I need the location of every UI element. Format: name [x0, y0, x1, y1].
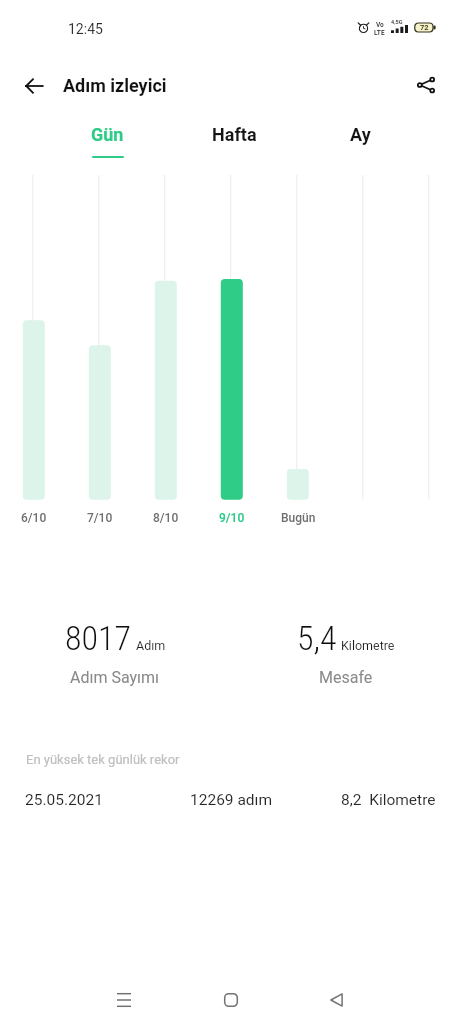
staticText: 72 [420, 23, 429, 32]
staticText: 12:45 [68, 21, 103, 37]
staticText: 4,5G [391, 19, 403, 25]
button[interactable]: Hafta [171, 112, 297, 156]
staticText: 8/10 [153, 511, 179, 525]
staticText: 12269 adım [190, 791, 273, 809]
staticText: 5,4 [297, 618, 337, 658]
staticText: 6/10 [21, 511, 47, 525]
staticText: Gün [91, 124, 124, 145]
button[interactable]: Recent apps [98, 974, 150, 1024]
staticText: 8,2 Kilometre [341, 791, 436, 809]
staticText: Mesafe [319, 668, 373, 687]
staticText: Hafta [212, 124, 257, 145]
staticText: Ay [350, 124, 371, 145]
staticText: 9/10 [219, 511, 245, 525]
button[interactable]: Ay [297, 112, 423, 156]
button[interactable]: Home [205, 974, 257, 1024]
staticText: 8017 [65, 618, 132, 658]
staticText: En yüksek tek günlük rekor [26, 752, 180, 767]
staticText: 7/10 [87, 511, 113, 525]
staticText: Adım Sayımı [70, 668, 160, 687]
staticText: Adım [136, 638, 166, 653]
button[interactable]: Back [14, 66, 54, 106]
staticText: Vo [376, 21, 384, 29]
staticText: LTE [374, 29, 385, 37]
staticText: Bugün [281, 511, 316, 525]
button[interactable]: Gün [44, 112, 171, 158]
button[interactable]: Share [406, 65, 446, 105]
staticText: Kilometre [341, 638, 395, 653]
staticText: 25.05.2021 [25, 791, 103, 809]
button[interactable]: Back [310, 974, 362, 1024]
staticText: Adım izleyici [63, 75, 167, 96]
